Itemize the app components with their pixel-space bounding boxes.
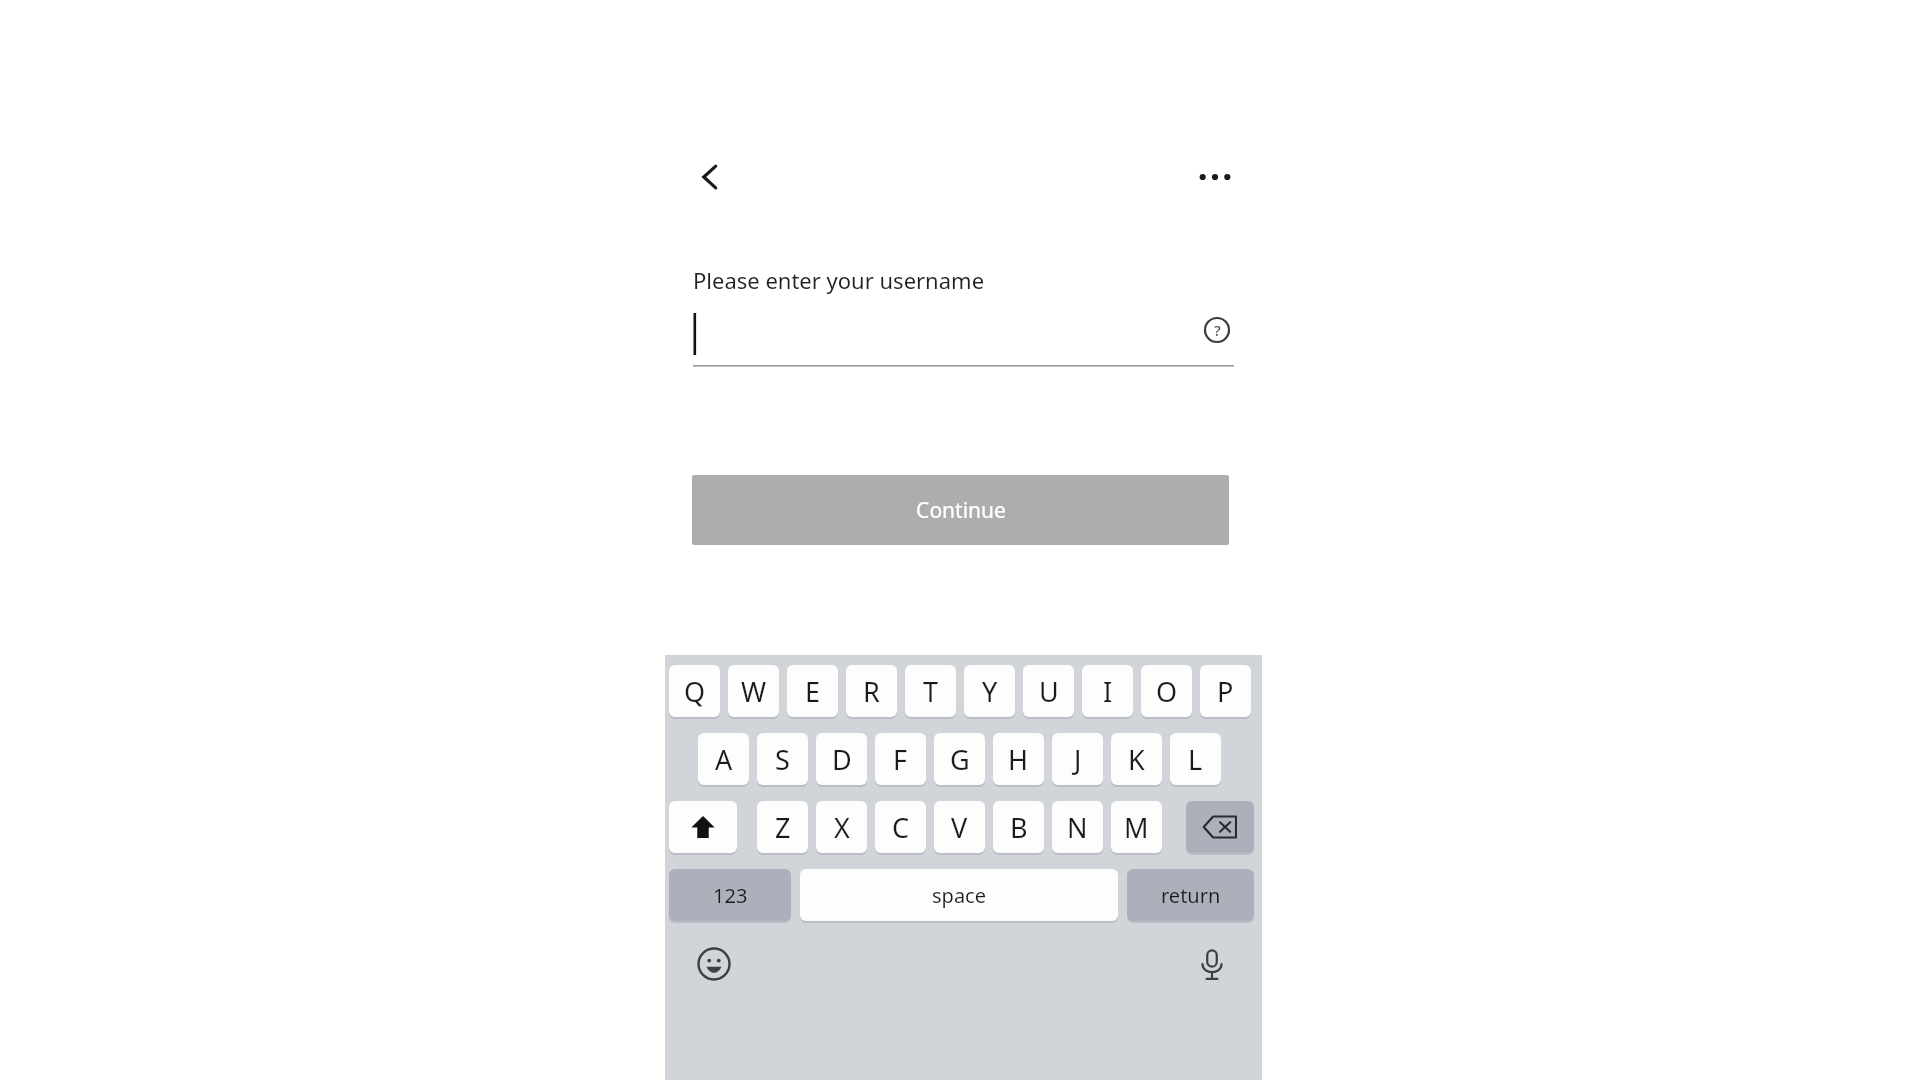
button[interactable]: Emoji — [687, 937, 741, 991]
button[interactable]: S — [757, 733, 808, 785]
button[interactable]: Voice input — [1185, 937, 1239, 991]
staticText: return — [1161, 882, 1221, 909]
button[interactable]: R — [846, 665, 897, 717]
button[interactable]: G — [934, 733, 985, 785]
button[interactable]: D — [816, 733, 867, 785]
staticText: C — [892, 809, 910, 846]
staticText: R — [863, 673, 880, 710]
staticText: E — [805, 673, 821, 710]
button[interactable]: Continue — [692, 475, 1229, 545]
staticText: space — [932, 882, 986, 909]
staticText: G — [950, 741, 970, 778]
staticText: Y — [982, 673, 998, 710]
button[interactable]: F — [875, 733, 926, 785]
button[interactable]: space — [800, 869, 1118, 921]
staticText: W — [741, 673, 767, 710]
staticText: H — [1008, 741, 1029, 778]
button[interactable]: Q — [669, 665, 720, 717]
staticText: ? — [1214, 320, 1221, 340]
staticText: V — [951, 809, 968, 846]
staticText: 123 — [713, 882, 748, 909]
staticText: O — [1156, 673, 1178, 710]
button[interactable]: Help — [1200, 313, 1234, 347]
staticText: Q — [684, 673, 706, 710]
button[interactable]: Z — [757, 801, 808, 853]
button[interactable]: More options — [1185, 147, 1245, 207]
staticText: J — [1074, 741, 1082, 778]
button[interactable]: X — [816, 801, 867, 853]
button[interactable]: E — [787, 665, 838, 717]
button[interactable]: O — [1141, 665, 1192, 717]
staticText: T — [923, 673, 939, 710]
button[interactable]: return — [1127, 869, 1254, 921]
staticText: A — [715, 741, 733, 778]
staticText: P — [1217, 673, 1234, 710]
button[interactable]: Back — [680, 147, 740, 207]
staticText: N — [1067, 809, 1088, 846]
staticText: B — [1010, 809, 1028, 846]
staticText: F — [893, 741, 908, 778]
button[interactable]: Backspace — [1186, 801, 1254, 853]
button[interactable]: T — [905, 665, 956, 717]
staticText: S — [775, 741, 790, 778]
button[interactable]: B — [993, 801, 1044, 853]
staticText: D — [832, 741, 852, 778]
button[interactable]: C — [875, 801, 926, 853]
button[interactable]: Help — [693, 305, 1234, 367]
staticText: Z — [775, 809, 791, 846]
button[interactable]: Y — [964, 665, 1015, 717]
button[interactable]: U — [1023, 665, 1074, 717]
button[interactable]: Shift — [669, 801, 737, 853]
button[interactable]: L — [1170, 733, 1221, 785]
staticText: M — [1124, 809, 1149, 846]
button[interactable]: A — [698, 733, 749, 785]
button[interactable]: V — [934, 801, 985, 853]
button[interactable]: W — [728, 665, 779, 717]
staticText: I — [1103, 673, 1113, 710]
staticText: U — [1039, 673, 1059, 710]
staticText: Please enter your username — [693, 265, 985, 295]
button[interactable]: J — [1052, 733, 1103, 785]
staticText: X — [834, 809, 850, 846]
button[interactable]: P — [1200, 665, 1251, 717]
button[interactable]: K — [1111, 733, 1162, 785]
staticText: K — [1128, 741, 1145, 778]
button[interactable]: H — [993, 733, 1044, 785]
staticText: L — [1188, 741, 1203, 778]
button[interactable]: I — [1082, 665, 1133, 717]
button[interactable]: M — [1111, 801, 1162, 853]
staticText: Continue — [916, 496, 1006, 525]
button[interactable]: 123 — [669, 869, 791, 921]
button[interactable]: N — [1052, 801, 1103, 853]
